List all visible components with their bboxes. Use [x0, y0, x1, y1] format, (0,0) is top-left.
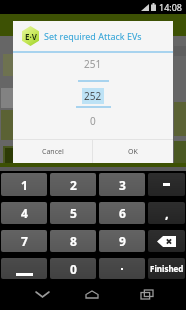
button[interactable]: 0	[50, 258, 96, 279]
button[interactable]: Hide keyboard	[21, 279, 63, 310]
button[interactable]: 6	[99, 202, 145, 224]
button[interactable]: Finished	[148, 258, 185, 279]
staticText: Set required Attack EVs	[44, 30, 142, 42]
button[interactable]: OK	[93, 140, 173, 163]
staticText: 2	[70, 177, 77, 193]
button[interactable]: 3	[99, 173, 145, 196]
staticText: Finished	[150, 263, 184, 274]
button[interactable]: Home	[71, 279, 113, 310]
staticText: 251	[84, 57, 102, 71]
button[interactable]: 2	[50, 173, 96, 196]
staticText: 1	[21, 177, 28, 193]
button[interactable]: 5	[50, 202, 96, 224]
button[interactable]: 9	[99, 230, 145, 252]
button[interactable]: ,	[148, 202, 185, 224]
other: Delete	[157, 236, 176, 247]
staticText: 252	[84, 89, 102, 103]
button[interactable]: 7	[1, 230, 47, 252]
button[interactable]: Period	[99, 258, 145, 279]
button[interactable]: Space	[1, 258, 47, 279]
other: Space	[1, 258, 47, 279]
staticText: 14:08	[159, 1, 183, 13]
button[interactable]: 4	[1, 202, 47, 224]
staticText: 8	[70, 233, 77, 249]
button[interactable]: Cancel	[13, 140, 92, 163]
staticText: ,	[165, 204, 169, 222]
staticText: OK	[128, 147, 138, 157]
staticText: E·V	[25, 31, 37, 42]
button[interactable]: 8	[50, 230, 96, 252]
staticText: 4	[21, 205, 28, 221]
staticText: 6	[119, 205, 126, 221]
button[interactable]: 1	[1, 173, 47, 196]
button[interactable]: Delete	[148, 230, 185, 252]
button[interactable]: Minus	[148, 173, 185, 196]
staticText: Cancel	[42, 147, 64, 157]
staticText: 7	[21, 233, 28, 249]
button[interactable]: Recent apps	[126, 279, 168, 310]
staticText: 0	[70, 261, 77, 277]
staticText: 5	[70, 205, 77, 221]
staticText: 9	[119, 233, 126, 249]
staticText: 3	[119, 177, 126, 193]
staticText: 0	[90, 114, 96, 128]
